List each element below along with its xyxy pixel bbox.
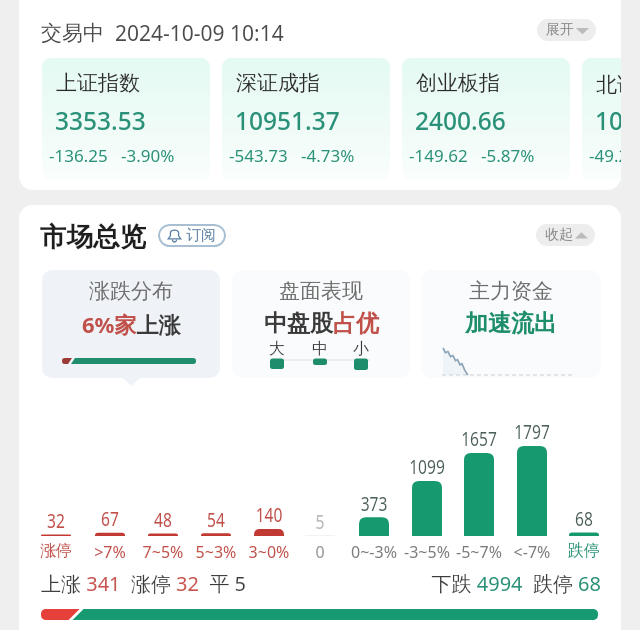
staticText: 中 bbox=[312, 339, 328, 359]
staticText: 大 bbox=[269, 339, 285, 359]
staticText: 加速流出 bbox=[465, 309, 557, 338]
staticText: 68 bbox=[543, 506, 625, 532]
staticText: 3353.53 bbox=[55, 104, 146, 137]
staticText: 7~5% bbox=[113, 541, 213, 563]
staticText: -4.73% bbox=[301, 144, 355, 167]
staticText: 1050.12 bbox=[595, 104, 621, 137]
staticText: -543.73 bbox=[229, 144, 288, 167]
staticText: 5~3% bbox=[166, 541, 266, 563]
staticText: 1657 bbox=[438, 426, 520, 452]
staticText: 1797 bbox=[491, 419, 573, 445]
staticText: -5~7% bbox=[429, 541, 529, 563]
staticText: >7% bbox=[60, 541, 160, 563]
staticText: 32 bbox=[15, 508, 97, 534]
staticText: -3.90% bbox=[121, 144, 175, 167]
staticText: 交易中 bbox=[41, 20, 104, 46]
staticText: 6%家上涨 bbox=[82, 309, 181, 339]
staticText: 深证成指 bbox=[236, 70, 320, 96]
button[interactable]: 涨跌比例 bbox=[41, 609, 598, 620]
button[interactable]: 订阅 bbox=[158, 224, 226, 247]
staticText: -3~5% bbox=[377, 541, 477, 563]
staticText: 140 bbox=[228, 502, 310, 528]
staticText: 市场总览 bbox=[40, 220, 146, 250]
staticText: 2024-10-09 10:14 bbox=[115, 19, 284, 48]
button[interactable]: 主力资金 bbox=[421, 270, 601, 378]
staticText: 10951.37 bbox=[235, 104, 340, 137]
staticText: 订阅 bbox=[186, 226, 216, 245]
button[interactable]: 盘面表现 bbox=[232, 270, 410, 378]
staticText: 1099 bbox=[386, 454, 468, 480]
staticText: 主力资金 bbox=[469, 278, 553, 304]
staticText: 3~0% bbox=[219, 541, 319, 563]
staticText: 下跌 4994 跌停 68 bbox=[330, 570, 601, 597]
button[interactable]: 展开 bbox=[537, 19, 596, 41]
staticText: 收起 bbox=[545, 226, 573, 244]
button[interactable]: 涨跌分布 bbox=[42, 270, 220, 378]
staticText: 小 bbox=[353, 339, 369, 359]
button[interactable]: 上证指数 bbox=[42, 58, 210, 180]
button[interactable]: 深证成指 bbox=[222, 58, 390, 180]
staticText: 跌停 bbox=[534, 541, 634, 561]
staticText: -149.62 bbox=[409, 144, 468, 167]
button[interactable]: 北证50 bbox=[582, 58, 621, 180]
staticText: 涨跌分布 bbox=[89, 278, 173, 304]
staticText: 67 bbox=[69, 506, 151, 532]
staticText: 2400.66 bbox=[415, 104, 506, 137]
staticText: 0 bbox=[270, 541, 370, 563]
staticText: 创业板指 bbox=[416, 70, 500, 96]
staticText: 展开 bbox=[546, 21, 574, 39]
staticText: <-7% bbox=[482, 541, 582, 563]
staticText: -136.25 bbox=[49, 144, 108, 167]
button[interactable]: 收起 bbox=[536, 224, 595, 246]
staticText: 上涨 341 涨停 32 平 5 bbox=[41, 570, 247, 597]
staticText: 上证指数 bbox=[56, 70, 140, 96]
staticText: 373 bbox=[333, 491, 415, 517]
staticText: -49.23 bbox=[589, 144, 621, 167]
staticText: 涨停 bbox=[6, 541, 106, 561]
staticText: 北证50 bbox=[596, 70, 621, 99]
staticText: 5 bbox=[279, 509, 361, 535]
staticText: 0~-3% bbox=[324, 541, 424, 563]
staticText: 中盘股占优 bbox=[264, 309, 379, 338]
staticText: 盘面表现 bbox=[279, 278, 363, 304]
staticText: -5.87% bbox=[481, 144, 535, 167]
button[interactable]: 创业板指 bbox=[402, 58, 570, 180]
staticText: 54 bbox=[175, 507, 257, 533]
staticText: 48 bbox=[122, 507, 204, 533]
